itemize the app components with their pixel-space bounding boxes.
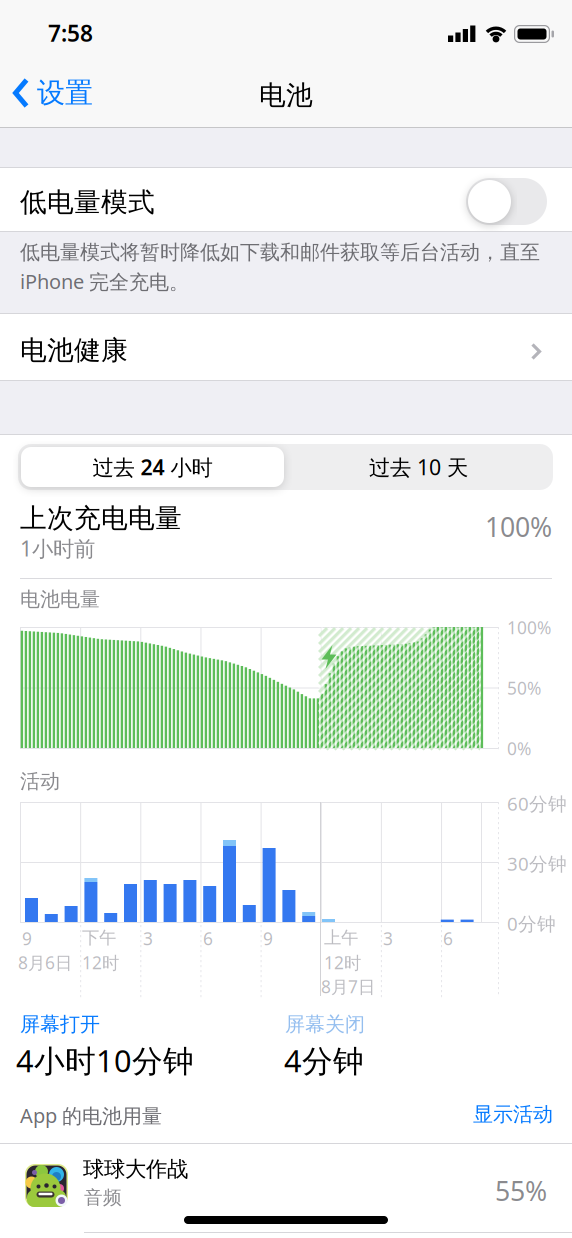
staticText: 30分钟	[507, 851, 567, 876]
button[interactable]: 电池健康	[0, 314, 572, 380]
staticText: 12时	[82, 951, 119, 974]
staticText: 上午	[324, 927, 358, 948]
staticText: 0%	[507, 737, 531, 760]
staticText: 低电量模式	[20, 186, 155, 219]
staticText: 3	[383, 927, 393, 950]
staticText: 上次充电电量	[20, 502, 182, 535]
button[interactable]: 球球大作战	[0, 1144, 572, 1238]
staticText: 60分钟	[507, 791, 567, 816]
staticText: 电池健康	[20, 334, 128, 367]
staticText: 1小时前	[20, 534, 95, 562]
staticText: 下午	[82, 927, 116, 948]
staticText: 球球大作战	[83, 1156, 188, 1182]
button[interactable]: 返回设置	[0, 69, 106, 117]
staticText: 4分钟	[284, 1040, 364, 1081]
staticText: 0分钟	[507, 911, 556, 936]
staticText: 音频	[84, 1186, 122, 1209]
staticText: App 的电池用量	[20, 1102, 162, 1129]
button[interactable]: 过去 24 小时	[21, 447, 284, 487]
staticText: 100%	[485, 509, 552, 544]
staticText: 过去 24 小时	[92, 453, 212, 481]
button[interactable]: 过去 10 天	[287, 447, 550, 487]
staticText: 4小时10分钟	[16, 1040, 194, 1081]
staticText: 电池电量	[20, 587, 100, 612]
staticText: 6	[443, 927, 453, 950]
staticText: 50%	[507, 676, 541, 699]
staticText: 3	[143, 927, 153, 950]
staticText: 显示活动	[473, 1102, 553, 1127]
staticText: 8月7日	[321, 975, 375, 998]
staticText: 8月6日	[18, 951, 72, 974]
staticText: 活动	[20, 769, 60, 794]
staticText: 9	[22, 927, 32, 950]
staticText: 6	[203, 927, 213, 950]
staticText: 屏幕打开	[20, 1012, 100, 1037]
staticText: 7:58	[48, 18, 93, 48]
staticText: 9	[263, 927, 273, 950]
staticText: 电池	[259, 79, 313, 112]
button[interactable]: 低电量模式	[466, 178, 547, 225]
staticText: 低电量模式将暂时降低如下载和邮件获取等后台活动，直至	[20, 240, 540, 265]
button[interactable]: 显示活动	[473, 1102, 553, 1127]
staticText: iPhone 完全充电。	[20, 268, 189, 295]
staticText: 过去 10 天	[369, 453, 468, 481]
staticText: 12时	[324, 951, 361, 974]
staticText: 100%	[507, 616, 551, 639]
staticText: 55%	[495, 1173, 547, 1208]
staticText: 设置	[37, 76, 93, 110]
staticText: 屏幕关闭	[285, 1012, 365, 1037]
